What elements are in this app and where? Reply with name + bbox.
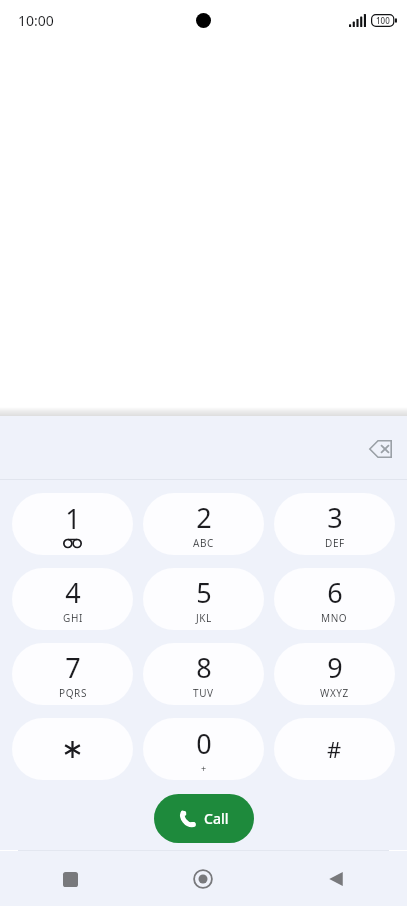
staticText: 6 [327, 574, 343, 611]
staticText: 10:00 [18, 11, 54, 30]
staticText: TUV [193, 686, 214, 700]
staticText: # [327, 734, 342, 764]
staticText: 8 [196, 649, 212, 686]
staticText: DEF [325, 536, 345, 550]
staticText: 1 [65, 500, 81, 537]
staticText: Call [204, 809, 229, 828]
button[interactable]: Call [154, 794, 254, 843]
staticText: 3 [327, 499, 343, 536]
button[interactable]: 9 [274, 643, 395, 705]
button[interactable]: 5 [143, 568, 264, 630]
button[interactable]: 6 [274, 568, 395, 630]
button[interactable]: Backspace [353, 422, 407, 476]
staticText: WXYZ [320, 686, 349, 700]
staticText: 7 [65, 649, 81, 686]
staticText: GHI [63, 611, 83, 625]
staticText: 2 [196, 499, 212, 536]
staticText: PQRS [59, 686, 87, 700]
button[interactable]: 7 [12, 643, 133, 705]
staticText: 5 [196, 574, 212, 611]
staticText: JKL [196, 611, 212, 625]
button[interactable]: # [274, 718, 395, 780]
staticText: 0 [196, 725, 212, 762]
button[interactable]: 2 [143, 493, 264, 555]
button[interactable] [12, 718, 133, 780]
button[interactable]: 8 [143, 643, 264, 705]
button[interactable]: Back [313, 856, 359, 902]
staticText: ABC [193, 536, 215, 550]
button[interactable]: 0 [143, 718, 264, 780]
staticText: + [201, 762, 207, 774]
button[interactable]: 4 [12, 568, 133, 630]
staticText: 4 [65, 574, 81, 611]
staticText: MNO [321, 611, 348, 625]
button[interactable]: Recents [47, 856, 93, 902]
staticText: 9 [327, 649, 343, 686]
button[interactable]: 3 [274, 493, 395, 555]
button[interactable]: Home [180, 856, 226, 902]
button[interactable]: 1 [12, 493, 133, 555]
staticText: 100 [376, 15, 390, 26]
